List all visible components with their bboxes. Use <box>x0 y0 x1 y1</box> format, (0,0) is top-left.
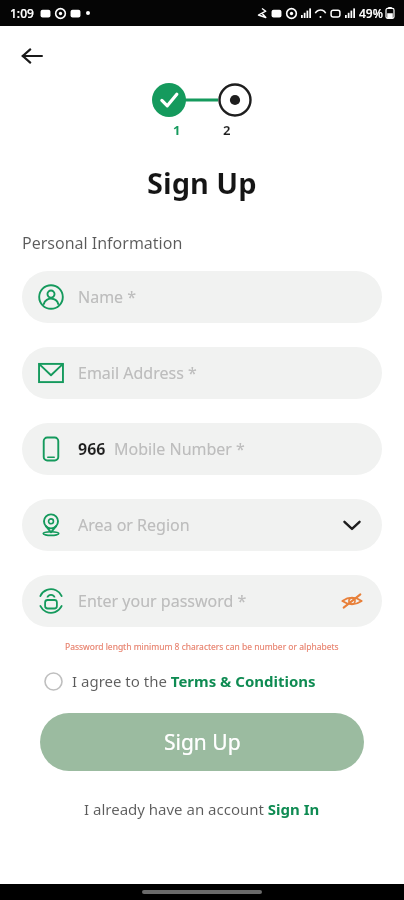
button[interactable]: I already have an account Sign In <box>84 799 320 819</box>
staticText: I already have an account Sign In <box>84 799 320 819</box>
staticText: Mobile Number * <box>114 438 245 460</box>
staticText: 966 <box>78 438 106 460</box>
button[interactable]: Area or Region <box>22 499 382 551</box>
button[interactable]: Back <box>12 36 52 76</box>
button[interactable]: Open area or region list <box>338 511 366 539</box>
staticText: Enter your password * <box>78 590 247 612</box>
staticText: I agree to the Terms & Conditions <box>72 671 316 691</box>
button[interactable]: Enter your password * <box>22 575 382 627</box>
staticText: Sign Up <box>164 728 241 757</box>
button[interactable]: Email Address * <box>22 347 382 399</box>
button[interactable]: I agree to the Terms & Conditions <box>44 671 316 691</box>
staticText: Password length minimum 8 characters can… <box>65 641 339 653</box>
staticText: Name * <box>78 286 137 308</box>
staticText: Sign Up <box>147 163 257 202</box>
staticText: 2 <box>223 121 231 139</box>
staticText: Area or Region <box>78 514 190 536</box>
button[interactable]: 966 <box>22 423 382 475</box>
staticText: 1:09 <box>10 5 34 21</box>
staticText: Personal Information <box>22 232 183 254</box>
button[interactable]: Sign Up <box>40 713 364 771</box>
staticText: 49% <box>359 5 383 21</box>
staticText: 1 <box>173 121 181 139</box>
button[interactable]: Show password <box>338 587 366 615</box>
button[interactable]: Name * <box>22 271 382 323</box>
staticText: Email Address * <box>78 362 197 384</box>
